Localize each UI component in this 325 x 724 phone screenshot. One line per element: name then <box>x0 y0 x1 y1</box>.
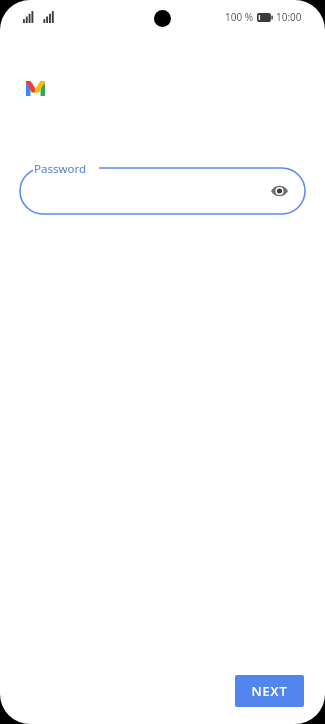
button[interactable]: NEXT <box>235 675 304 707</box>
button[interactable]: Show password <box>265 177 293 205</box>
staticText: NEXT <box>251 682 288 700</box>
staticText: Password <box>34 161 87 177</box>
staticText: 100 % <box>225 10 254 24</box>
button[interactable]: Show password <box>20 168 305 214</box>
staticText: 10:00 <box>276 10 302 24</box>
